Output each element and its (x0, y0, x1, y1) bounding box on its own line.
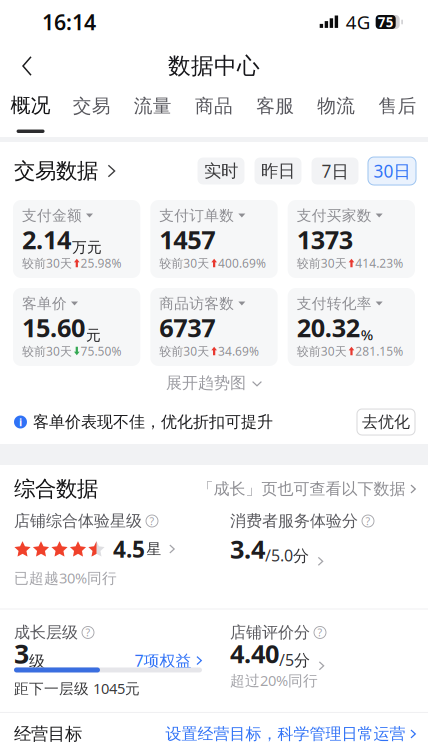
staticText: 已超越30%同行 (14, 568, 117, 587)
staticText: 较前30天 (297, 343, 347, 359)
staticText: 1457 (159, 223, 215, 256)
staticText: 400.69% (218, 255, 266, 271)
button[interactable]: 7项权益 (135, 650, 202, 671)
button[interactable]: 客单价 (13, 288, 140, 366)
staticText: 4G (346, 10, 371, 34)
staticText: 较前30天 (22, 255, 72, 271)
staticText: /5.0分 (265, 545, 309, 566)
staticText: 交易数据 (14, 158, 98, 184)
button[interactable]: 支付订单数 (150, 200, 278, 278)
staticText: 281.15% (355, 343, 403, 359)
staticText: 经营目标 (14, 723, 82, 745)
staticText: 414.23% (355, 255, 403, 271)
staticText: 成长层级 (14, 623, 78, 642)
staticText: 昨日 (261, 160, 295, 182)
staticText: 15.60 (22, 311, 85, 344)
staticText: 1373 (297, 223, 353, 256)
staticText: 较前30天 (159, 255, 209, 271)
staticText: 距下一层级 1045元 (14, 678, 140, 698)
button[interactable]: 7日 (311, 157, 359, 185)
staticText: i (19, 415, 22, 429)
staticText: 支付金额 (22, 206, 82, 224)
staticText: 2.14 (22, 223, 71, 256)
staticText: 较前30天 (297, 255, 347, 271)
staticText: 店铺评价分 (230, 623, 310, 642)
staticText: 消费者服务体验分 (230, 511, 358, 531)
staticText: 概况 (11, 93, 51, 117)
staticText: % (361, 325, 373, 344)
staticText: 支付转化率 (297, 294, 372, 312)
staticText: ? (149, 514, 154, 528)
staticText: 34.69% (218, 343, 259, 359)
button[interactable]: 商品访客数 (150, 288, 278, 366)
button[interactable]: 交易数据 (14, 158, 116, 184)
staticText: 3.4 (230, 532, 265, 566)
staticText: 物流 (317, 95, 355, 117)
staticText: 万元 (72, 238, 102, 256)
staticText: 较前30天 (22, 343, 72, 359)
staticText: 16:14 (42, 8, 96, 36)
button[interactable]: 30日 (368, 157, 416, 185)
button[interactable]: 返回 (0, 44, 48, 88)
staticText: 4.5 (113, 534, 145, 564)
button[interactable]: 交易 (61, 88, 122, 137)
staticText: 流量 (134, 95, 172, 117)
button[interactable]: 「成长」页也可查看以下数据 (198, 479, 416, 499)
staticText: ? (365, 514, 370, 528)
staticText: 商品 (195, 95, 233, 117)
staticText: 去优化 (362, 412, 410, 432)
staticText: 较前30天 (159, 343, 209, 359)
staticText: /5分 (279, 649, 310, 670)
staticText: 超过20%同行 (230, 670, 318, 690)
button[interactable]: 实时 (197, 157, 245, 185)
staticText: 支付订单数 (159, 206, 234, 224)
button[interactable]: 设置经营目标，科学管理日常运营 (166, 724, 416, 744)
staticText: 75.50% (81, 343, 122, 359)
button[interactable]: 物流 (306, 88, 367, 137)
staticText: 实时 (204, 160, 238, 182)
staticText: ? (317, 625, 322, 640)
staticText: 级 (29, 651, 45, 671)
staticText: 客单价表现不佳，优化折扣可提升 (33, 412, 273, 432)
button[interactable]: 展开趋势图 (166, 366, 262, 400)
staticText: 25.98% (81, 255, 122, 271)
staticText: 20.32 (297, 311, 360, 344)
button[interactable]: 流量 (122, 88, 183, 137)
staticText: 6737 (159, 311, 215, 344)
staticText: 交易 (73, 95, 111, 117)
staticText: 店铺综合体验星级 (14, 511, 142, 531)
button[interactable]: 概况 (0, 88, 61, 137)
staticText: 客单价 (22, 294, 67, 312)
staticText: 「成长」页也可查看以下数据 (198, 479, 406, 499)
button[interactable]: 昨日 (254, 157, 302, 185)
staticText: 综合数据 (14, 476, 98, 502)
staticText: 75 (378, 13, 394, 31)
staticText: 数据中心 (168, 52, 260, 80)
staticText: 4.40 (230, 637, 279, 670)
button[interactable]: 消费者服务体验分 (230, 513, 416, 582)
staticText: ? (85, 625, 90, 640)
button[interactable]: 商品 (183, 88, 244, 137)
button[interactable]: 去优化 (357, 409, 415, 435)
staticText: 7日 (321, 159, 348, 182)
button[interactable]: 支付买家数 (288, 200, 415, 278)
button[interactable]: 客服 (245, 88, 306, 137)
staticText: 客服 (256, 95, 294, 117)
staticText: 售后 (378, 95, 416, 117)
staticText: 星 (146, 540, 161, 558)
button[interactable]: 店铺评价分 (230, 624, 416, 690)
button[interactable]: 店铺综合体验星级 (14, 513, 230, 587)
staticText: 展开趋势图 (166, 373, 246, 393)
staticText: 设置经营目标，科学管理日常运营 (166, 724, 406, 744)
button[interactable]: 支付转化率 (288, 288, 415, 366)
button[interactable]: 支付金额 (13, 200, 140, 278)
staticText: 商品访客数 (159, 294, 234, 312)
staticText: 7项权益 (135, 650, 192, 671)
staticText: 3 (14, 636, 29, 671)
button[interactable]: 售后 (367, 88, 428, 137)
staticText: 30日 (373, 159, 410, 182)
staticText: 元 (86, 326, 101, 344)
staticText: 支付买家数 (297, 206, 372, 224)
